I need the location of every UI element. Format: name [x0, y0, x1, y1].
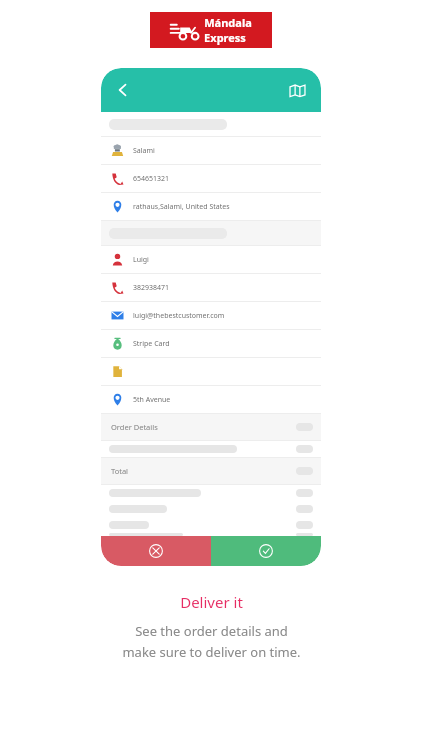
button[interactable]: Reject order	[101, 536, 211, 566]
staticText: Total	[111, 466, 129, 476]
button[interactable]: Stripe Card	[101, 330, 321, 357]
staticText: 654651321	[133, 174, 170, 184]
staticText: 382938471	[133, 283, 170, 293]
button[interactable]: Accept order	[211, 536, 321, 566]
button[interactable]: Salami	[101, 137, 321, 164]
button[interactable]	[101, 358, 321, 385]
staticText: Order Details	[111, 422, 158, 432]
button[interactable]: luigi@thebestcustomer.com	[101, 302, 321, 329]
staticText: luigi@thebestcustomer.com	[133, 311, 225, 321]
button[interactable]: Luigi	[101, 246, 321, 273]
button[interactable]: 382938471	[101, 274, 321, 301]
button[interactable]: Back	[107, 74, 139, 106]
button[interactable]: 654651321	[101, 165, 321, 192]
button[interactable]: 5th Avenue	[101, 386, 321, 413]
staticText: Stripe Card	[133, 339, 170, 349]
staticText: Express	[204, 30, 246, 45]
staticText: Luigi	[133, 255, 149, 265]
staticText: make sure to deliver on time.	[122, 643, 301, 661]
button[interactable]: Map	[281, 74, 313, 106]
staticText: See the order details and	[135, 622, 288, 640]
button[interactable]: rathaus,Salami, United States	[101, 193, 321, 220]
staticText: Mándala	[204, 15, 252, 30]
staticText: rathaus,Salami, United States	[133, 202, 230, 212]
staticText: Salami	[133, 146, 155, 156]
staticText: 5th Avenue	[133, 395, 171, 405]
staticText: Deliver it	[180, 592, 243, 612]
